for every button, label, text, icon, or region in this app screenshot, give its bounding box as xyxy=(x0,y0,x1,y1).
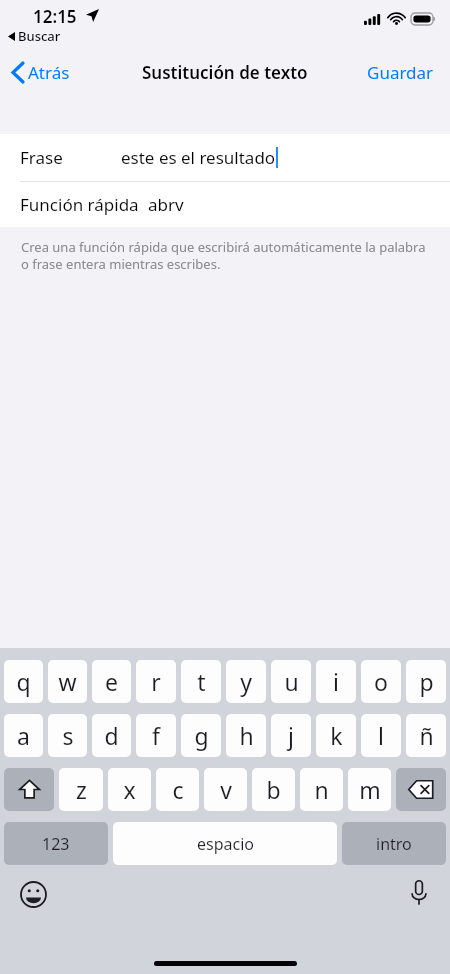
button[interactable]: espacio xyxy=(113,822,337,865)
button[interactable]: p xyxy=(406,660,446,703)
button[interactable]: o xyxy=(361,660,401,703)
staticText: Sustitución de texto xyxy=(142,61,308,84)
staticText: p xyxy=(419,666,434,697)
button[interactable]: w xyxy=(48,660,87,703)
staticText: d xyxy=(104,720,119,751)
button[interactable]: Función rápida xyxy=(0,182,450,227)
button[interactable]: g xyxy=(181,714,221,757)
staticText: Frase xyxy=(20,146,63,169)
staticText: Guardar xyxy=(367,61,434,84)
staticText: a xyxy=(17,720,30,751)
staticText: c xyxy=(172,774,184,805)
staticText: 123 xyxy=(42,833,70,855)
button[interactable]: d xyxy=(92,714,131,757)
staticText: x xyxy=(123,774,136,805)
staticText: y xyxy=(240,666,252,697)
button[interactable]: n xyxy=(300,768,343,811)
staticText: j xyxy=(288,720,294,751)
button[interactable]: c xyxy=(156,768,199,811)
staticText: k xyxy=(330,720,343,751)
button[interactable]: b xyxy=(252,768,295,811)
button[interactable]: Dictado xyxy=(402,875,436,909)
staticText: e xyxy=(105,666,118,697)
staticText: n xyxy=(314,774,329,805)
button[interactable]: y xyxy=(226,660,266,703)
button[interactable]: Emoji xyxy=(16,877,50,911)
button[interactable]: r xyxy=(136,660,176,703)
staticText: ñ xyxy=(419,720,434,751)
button[interactable]: f xyxy=(136,714,176,757)
button[interactable]: j xyxy=(271,714,311,757)
staticText: este es el resultado xyxy=(121,146,276,169)
button[interactable]: l xyxy=(361,714,401,757)
button[interactable]: m xyxy=(348,768,391,811)
button[interactable]: intro xyxy=(342,822,446,865)
staticText: intro xyxy=(376,833,412,855)
staticText: abrv xyxy=(148,193,184,216)
staticText: Atrás xyxy=(28,61,70,84)
staticText: t xyxy=(197,666,206,697)
staticText: z xyxy=(76,774,87,805)
button[interactable]: k xyxy=(316,714,356,757)
button[interactable]: q xyxy=(4,660,43,703)
button[interactable]: a xyxy=(4,714,43,757)
button[interactable]: v xyxy=(204,768,247,811)
button[interactable]: i xyxy=(316,660,356,703)
staticText: Función rápida xyxy=(20,193,139,216)
button[interactable]: Guardar xyxy=(351,53,450,92)
staticText: w xyxy=(58,666,77,697)
button[interactable]: h xyxy=(226,714,266,757)
button[interactable]: z xyxy=(59,768,103,811)
staticText: o xyxy=(374,666,388,697)
staticText: h xyxy=(239,720,254,751)
button[interactable]: u xyxy=(271,660,311,703)
staticText: espacio xyxy=(197,833,254,855)
button[interactable]: x xyxy=(108,768,151,811)
staticText: b xyxy=(266,774,281,805)
staticText: s xyxy=(62,720,74,751)
staticText: i xyxy=(333,666,339,697)
staticText: 12:15 xyxy=(33,5,77,28)
staticText: l xyxy=(378,720,384,751)
staticText: q xyxy=(16,666,31,697)
button[interactable]: 123 xyxy=(4,822,108,865)
staticText: u xyxy=(284,666,299,697)
button[interactable]: s xyxy=(48,714,87,757)
button[interactable]: Atrás xyxy=(0,55,80,90)
staticText: r xyxy=(151,666,161,697)
staticText: v xyxy=(220,774,232,805)
button[interactable]: Mayúsculas xyxy=(4,768,54,811)
button[interactable]: Borrar xyxy=(396,768,446,811)
button[interactable]: t xyxy=(181,660,221,703)
button[interactable]: e xyxy=(92,660,131,703)
button[interactable]: ñ xyxy=(406,714,446,757)
staticText: f xyxy=(152,720,160,751)
staticText: g xyxy=(194,720,209,751)
staticText: Buscar xyxy=(18,27,61,45)
staticText: m xyxy=(359,774,381,805)
button[interactable]: Frase xyxy=(0,134,450,181)
staticText: Crea una función rápida que escribirá au… xyxy=(21,238,428,273)
